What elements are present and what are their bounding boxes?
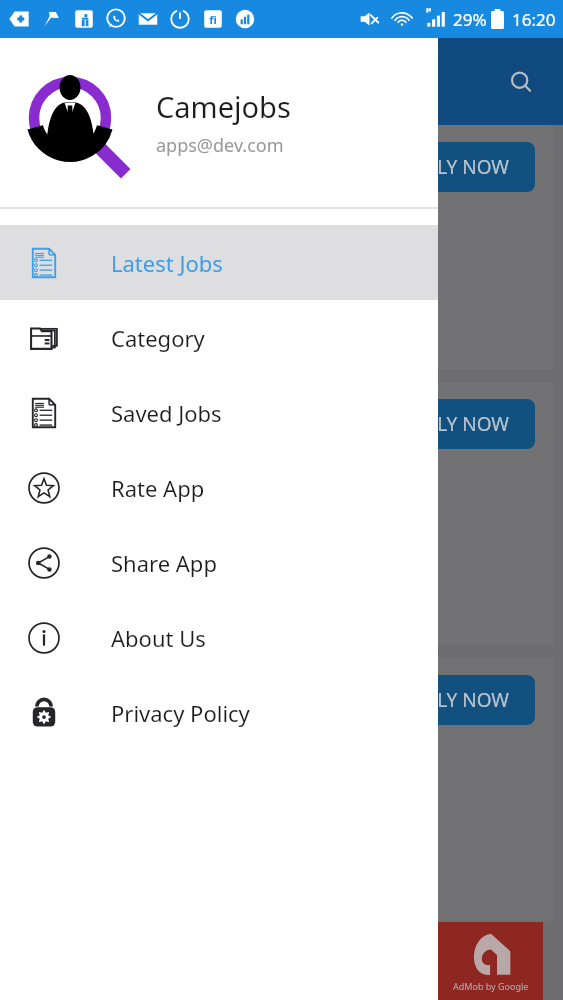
button[interactable]: Rate App — [0, 450, 438, 525]
staticText: APPLY NOW — [402, 154, 509, 180]
staticText: Latest Jobs — [111, 248, 223, 278]
button[interactable]: Category — [0, 300, 438, 375]
staticText: Camejobs — [156, 87, 291, 126]
staticText: Privacy Policy — [111, 698, 250, 728]
staticText: fi — [209, 12, 217, 27]
button[interactable]: Share App — [0, 525, 438, 600]
button[interactable]: Latest Jobs — [0, 225, 438, 300]
button[interactable]: APPLY NOW — [375, 399, 535, 449]
button[interactable]: About Us — [0, 600, 438, 675]
button[interactable]: APPLY NOW — [9, 382, 554, 645]
button[interactable]: APPLY NOW — [9, 125, 554, 370]
staticText: d, — [17, 322, 34, 348]
staticText: Saved Jobs — [111, 398, 222, 428]
staticText: AdMob by Google — [453, 980, 529, 992]
button[interactable]: Search — [499, 60, 543, 104]
button[interactable]: APPLY NOW — [375, 675, 535, 725]
button[interactable]: Privacy Policy — [0, 675, 438, 750]
button[interactable]: Saved Jobs — [0, 375, 438, 450]
button[interactable]: APPLY NOW — [9, 658, 554, 921]
staticText: Share App — [111, 548, 217, 578]
staticText: About Us — [111, 623, 206, 653]
staticText: 29% — [453, 8, 487, 31]
staticText: apps@dev.com — [156, 133, 284, 158]
staticText: Category — [111, 323, 205, 353]
staticText: 16:20 — [512, 8, 556, 31]
staticText: APPLY NOW — [402, 411, 509, 437]
staticText: APPLY NOW — [402, 687, 509, 713]
staticText: Rate App — [111, 473, 205, 503]
button[interactable]: APPLY NOW — [375, 142, 535, 192]
